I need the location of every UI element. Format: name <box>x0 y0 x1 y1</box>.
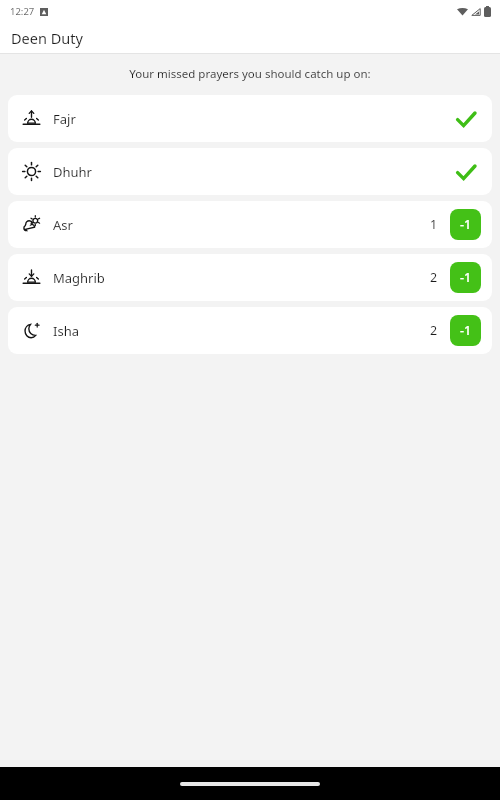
button[interactable]: Decrease Asr missed count <box>450 209 481 240</box>
staticText: Your missed prayers you should catch up … <box>0 66 500 82</box>
staticText: Maghrib <box>53 269 105 287</box>
button[interactable]: Asr <box>8 201 492 248</box>
button[interactable]: Fajr completed <box>451 104 481 134</box>
button[interactable]: Decrease Maghrib missed count <box>450 262 481 293</box>
staticText: -1 <box>460 322 472 339</box>
button[interactable]: Maghrib <box>8 254 492 301</box>
staticText: -1 <box>460 216 472 233</box>
staticText: 2 <box>430 269 438 286</box>
button[interactable]: Isha <box>8 307 492 354</box>
staticText: -1 <box>460 269 472 286</box>
staticText: 2 <box>430 322 438 339</box>
staticText: Dhuhr <box>53 163 92 181</box>
button[interactable]: Decrease Isha missed count <box>450 315 481 346</box>
staticText: 1 <box>430 216 438 233</box>
button[interactable]: Fajr <box>8 95 492 142</box>
staticText: 12:27 <box>10 5 35 18</box>
staticText: Deen Duty <box>11 28 83 48</box>
staticText: Isha <box>53 322 79 340</box>
button[interactable]: Dhuhr completed <box>451 157 481 187</box>
button[interactable]: Dhuhr <box>8 148 492 195</box>
staticText: Asr <box>53 216 73 234</box>
staticText: Fajr <box>53 110 76 128</box>
